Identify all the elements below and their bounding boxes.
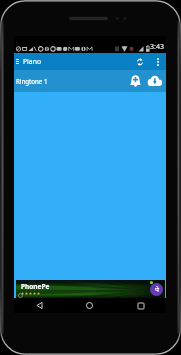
button[interactable]: More options xyxy=(149,53,166,70)
staticText: Ringtone 1 xyxy=(16,77,48,85)
button[interactable]: Recent apps xyxy=(115,298,166,313)
button[interactable]: Navigation menu xyxy=(14,53,21,70)
button[interactable]: Ringtone 1 xyxy=(14,70,166,92)
staticText: PhonePe xyxy=(21,282,50,291)
button[interactable]: Back xyxy=(14,298,64,313)
button[interactable]: Refresh xyxy=(130,53,149,70)
staticText: Piano xyxy=(23,57,41,66)
button[interactable]: PhonePe xyxy=(14,280,166,298)
button[interactable]: Download xyxy=(145,70,165,92)
button[interactable]: Home xyxy=(64,298,115,313)
staticText: पे xyxy=(155,285,159,295)
button[interactable]: Set as ringtone xyxy=(125,70,145,92)
staticText: 3:43 xyxy=(150,42,164,52)
